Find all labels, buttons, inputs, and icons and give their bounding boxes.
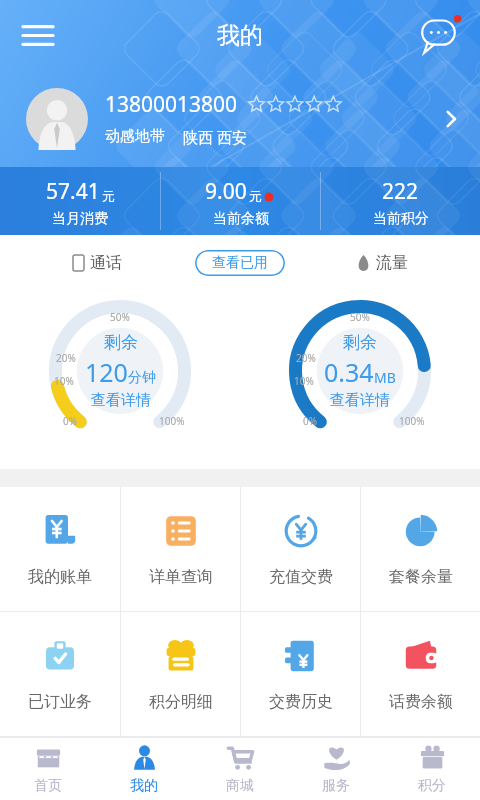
staticText: 服务 — [322, 777, 350, 795]
staticText: 动感地带 — [105, 127, 165, 146]
staticText: 10% — [294, 374, 314, 388]
button[interactable]: 50% — [240, 281, 480, 461]
staticText: 剩余 — [343, 332, 377, 353]
staticText: 套餐余量 — [389, 567, 453, 587]
button[interactable]: 我的 — [96, 738, 192, 800]
button[interactable]: 已订业务 — [0, 612, 120, 736]
button[interactable]: 商城 — [192, 738, 288, 800]
staticText: 商城 — [226, 777, 254, 795]
staticText: 0% — [303, 414, 318, 428]
button[interactable]: 充值交费 — [241, 487, 360, 611]
staticText: 0.34 — [324, 355, 374, 389]
button[interactable]: 话费余额 — [361, 612, 480, 736]
staticText: 通话 — [90, 253, 122, 273]
staticText: 元 — [102, 188, 115, 204]
button[interactable]: 通话 — [0, 253, 195, 273]
button[interactable]: 积分 — [384, 738, 480, 800]
button[interactable]: 服务 — [288, 738, 384, 800]
staticText: 20% — [56, 351, 76, 365]
staticText: 当前余额 — [213, 210, 269, 228]
staticText: 话费余额 — [389, 692, 453, 712]
staticText: 陕西 西安 — [183, 127, 247, 147]
staticText: 查看已用 — [212, 254, 268, 272]
staticText: 100% — [159, 414, 185, 428]
staticText: 分钟 — [128, 369, 156, 387]
staticText: 我的 — [217, 21, 263, 50]
staticText: 我的账单 — [28, 567, 92, 587]
button[interactable]: 积分明细 — [121, 612, 240, 736]
staticText: 查看详情 — [91, 391, 151, 410]
staticText: 积分明细 — [149, 692, 213, 712]
staticText: 当月消费 — [52, 210, 108, 228]
staticText: 222 — [382, 177, 419, 206]
button[interactable]: 9.00 — [161, 167, 320, 235]
staticText: 元 — [249, 188, 262, 204]
button[interactable]: 套餐余量 — [361, 487, 480, 611]
staticText: 0% — [63, 414, 78, 428]
staticText: 100% — [399, 414, 425, 428]
staticText: 20% — [296, 351, 316, 365]
staticText: 首页 — [34, 777, 62, 795]
staticText: 剩余 — [104, 332, 138, 353]
button[interactable]: 查看已用 — [195, 250, 285, 276]
staticText: MB — [374, 368, 396, 387]
staticText: 120 — [85, 355, 128, 389]
staticText: 积分 — [418, 777, 446, 795]
staticText: 57.41 — [46, 177, 100, 206]
button[interactable]: 交费历史 — [241, 612, 360, 736]
staticText: 当前积分 — [373, 210, 429, 228]
staticText: 13800013800 — [105, 90, 238, 119]
button[interactable]: 首页 — [0, 738, 96, 800]
staticText: 已订业务 — [28, 692, 92, 712]
staticText: 查看详情 — [330, 391, 390, 410]
staticText: 50% — [350, 310, 370, 324]
button[interactable]: 50% — [0, 281, 240, 461]
staticText: 我的 — [130, 777, 158, 795]
button[interactable]: 13800013800 — [0, 70, 480, 167]
staticText: 充值交费 — [269, 567, 333, 587]
staticText: 10% — [54, 374, 74, 388]
staticText: 交费历史 — [269, 692, 333, 712]
button[interactable]: 我的账单 — [0, 487, 120, 611]
button[interactable]: 57.41 — [0, 167, 160, 235]
button[interactable]: Messages — [414, 7, 470, 63]
staticText: 50% — [110, 310, 130, 324]
button[interactable]: 222 — [321, 167, 480, 235]
staticText: 详单查询 — [149, 567, 213, 587]
button[interactable]: Menu — [12, 9, 64, 61]
staticText: 流量 — [376, 253, 408, 273]
button[interactable]: 详单查询 — [121, 487, 240, 611]
button[interactable]: 流量 — [285, 253, 480, 273]
staticText: 9.00 — [205, 177, 247, 206]
